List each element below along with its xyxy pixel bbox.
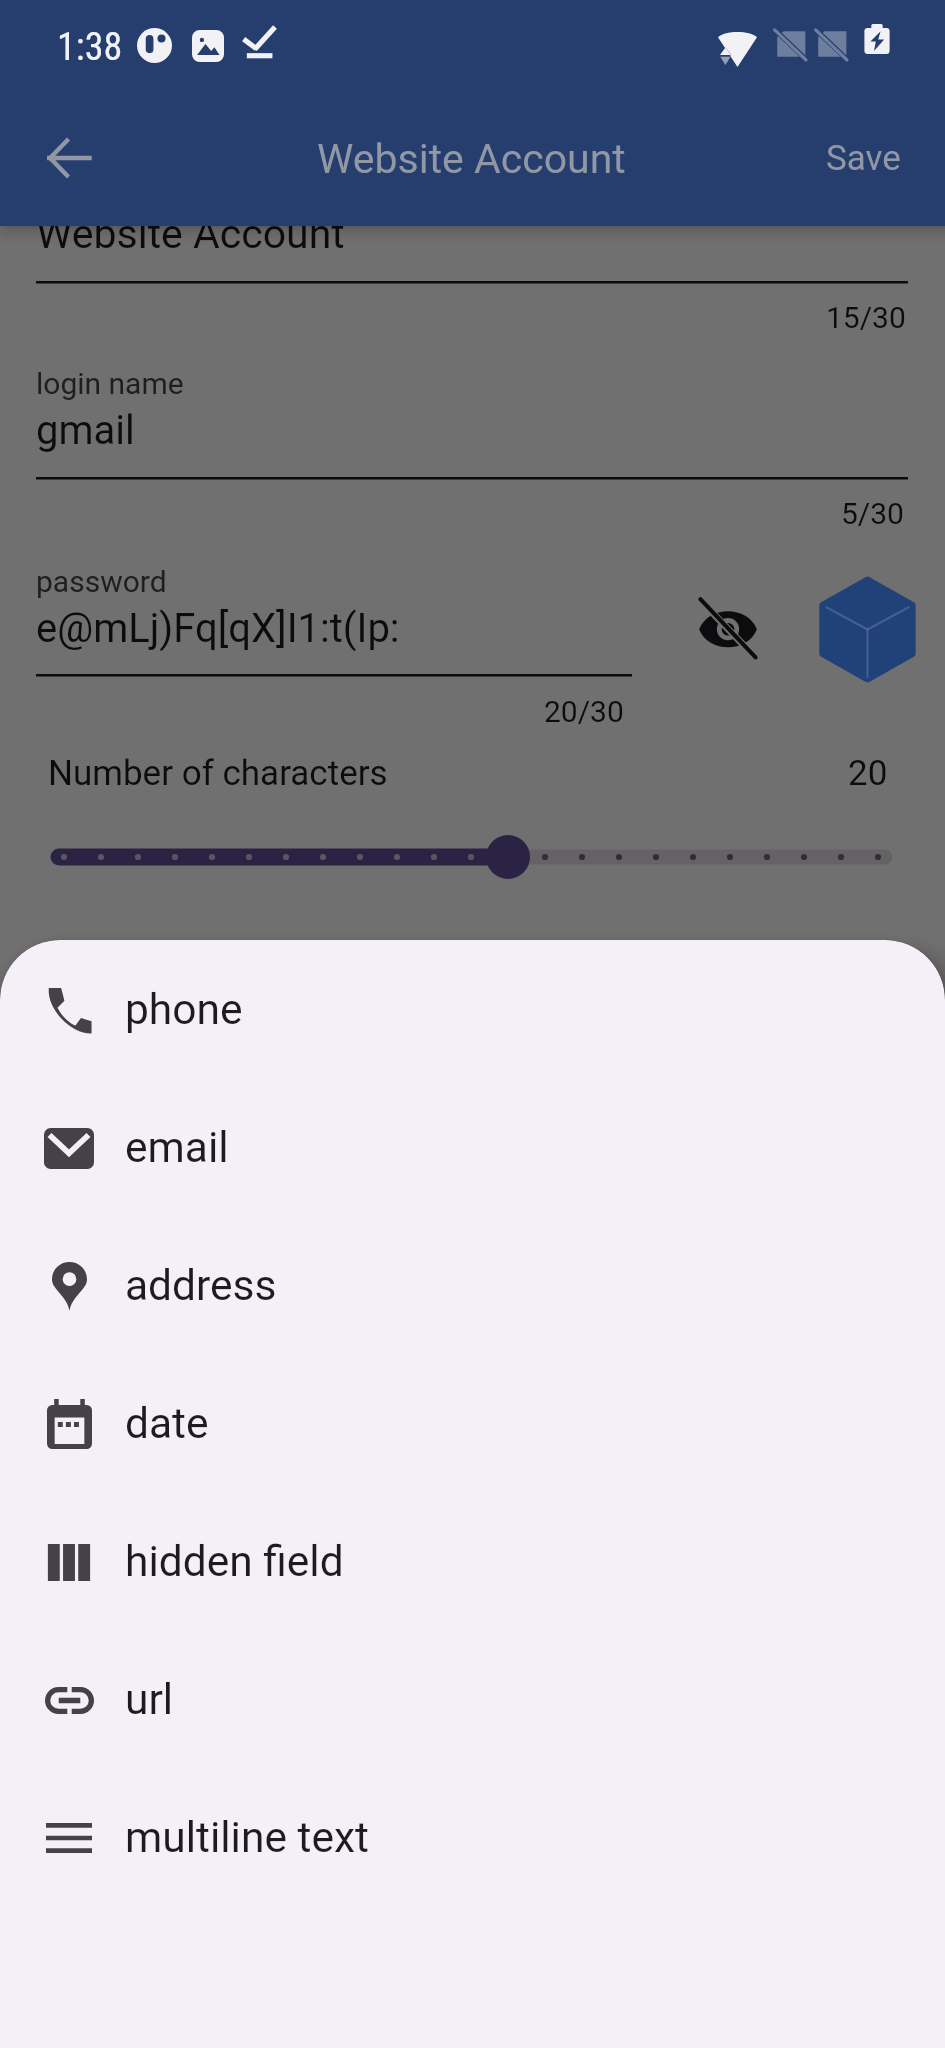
staticText: Number of characters bbox=[48, 753, 388, 794]
button[interactable]: Save bbox=[826, 138, 901, 179]
button[interactable]: url bbox=[0, 1631, 945, 1769]
button[interactable]: hidden field bbox=[0, 1493, 945, 1631]
staticText: 15/30 bbox=[826, 300, 906, 335]
button[interactable]: multiline text bbox=[0, 1769, 945, 1907]
staticText: Website Account bbox=[36, 210, 345, 258]
staticText: e@mLj)Fq[qX]I1:t(Ip: bbox=[36, 605, 400, 652]
staticText: address bbox=[125, 1261, 277, 1311]
staticText: date bbox=[125, 1399, 209, 1449]
staticText: password bbox=[36, 564, 167, 599]
staticText: phone bbox=[125, 985, 243, 1035]
staticText: 1:38 bbox=[57, 25, 123, 70]
staticText: gmail bbox=[36, 407, 135, 454]
staticText: login name bbox=[36, 366, 184, 401]
staticText: multiline text bbox=[125, 1813, 369, 1863]
staticText: hidden field bbox=[125, 1537, 344, 1587]
button[interactable]: email bbox=[0, 1079, 945, 1217]
staticText: 20 bbox=[848, 753, 888, 794]
staticText: 20/30 bbox=[544, 694, 624, 729]
staticText: Website Account bbox=[317, 135, 626, 183]
button[interactable]: address bbox=[0, 1217, 945, 1355]
button[interactable]: phone bbox=[0, 941, 945, 1079]
staticText: Save bbox=[826, 138, 901, 179]
staticText: 5/30 bbox=[841, 496, 904, 531]
button[interactable]: Back bbox=[33, 122, 105, 194]
button[interactable]: Password length bbox=[40, 826, 905, 888]
staticText: email bbox=[125, 1123, 229, 1173]
button[interactable]: Toggle password visibility bbox=[690, 590, 766, 666]
staticText: url bbox=[125, 1675, 174, 1725]
button[interactable]: date bbox=[0, 1355, 945, 1493]
button[interactable]: Generate password bbox=[820, 578, 915, 681]
